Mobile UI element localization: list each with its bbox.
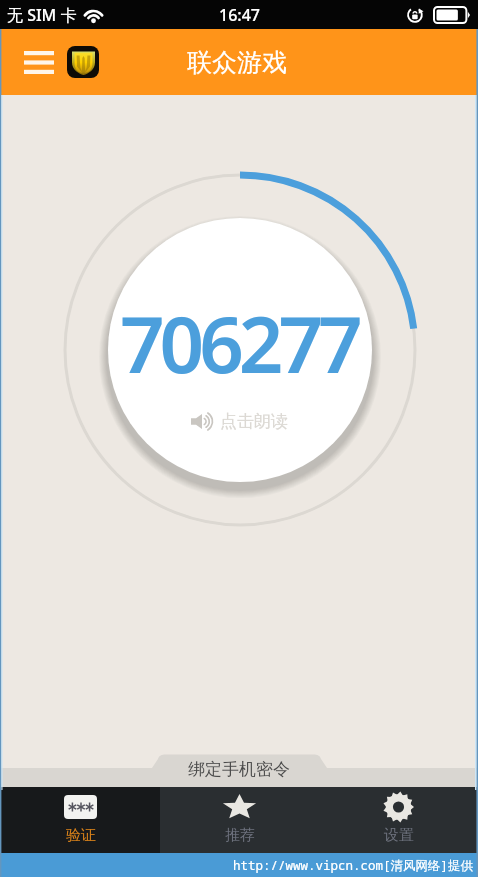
staticText: 推荐 [225,826,255,845]
button[interactable]: 点击朗读 [191,411,288,432]
staticText: 验证 [66,826,96,845]
button[interactable]: 绑定手机密令 [0,754,478,787]
button[interactable]: App logo [67,46,99,78]
button[interactable]: 设置 [319,787,478,853]
staticText: 无 SIM 卡 [7,4,77,26]
staticText: 16:47 [219,4,260,26]
staticText: 设置 [384,826,414,845]
button[interactable]: 验证 [0,787,160,853]
staticText: http://www.vipcn.com[清风网络]提供 [233,857,474,874]
staticText: 绑定手机密令 [188,759,290,780]
staticText: 706277 [120,290,358,396]
button[interactable]: 推荐 [160,787,319,853]
button[interactable]: Menu [12,39,65,85]
staticText: 联众游戏 [187,47,287,78]
staticText: 点击朗读 [220,411,288,432]
